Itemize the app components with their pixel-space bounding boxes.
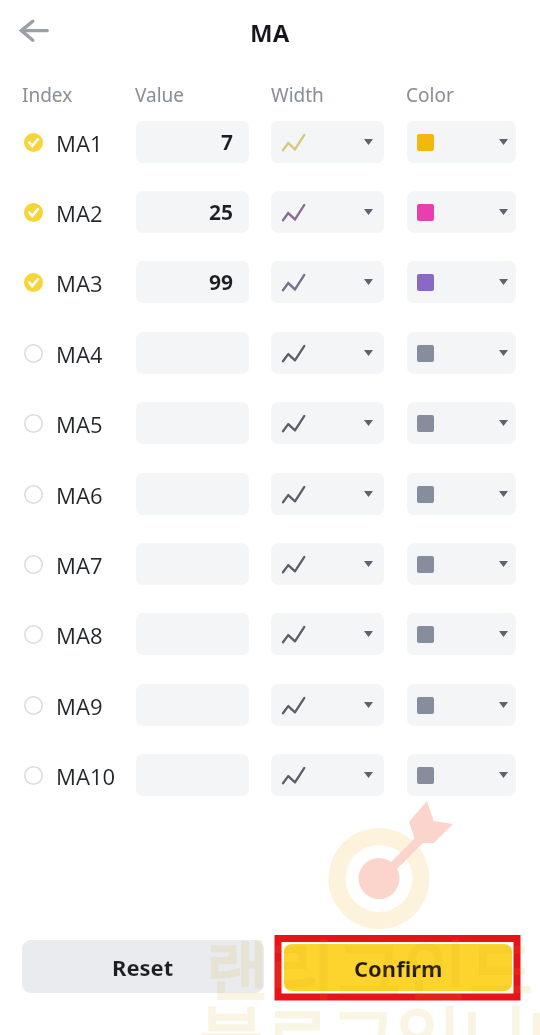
staticText: Color [406, 82, 454, 108]
button[interactable]: Width [271, 684, 384, 726]
button[interactable]: Color [407, 473, 516, 515]
button[interactable]: Width [271, 754, 384, 796]
staticText: Width [271, 82, 324, 108]
button[interactable]: Width [271, 402, 384, 444]
staticText: MA3 [56, 268, 103, 296]
staticText: MA6 [56, 480, 103, 508]
button[interactable]: MA4 [24, 339, 130, 367]
staticText: 7 [221, 128, 234, 157]
button[interactable]: Width [271, 543, 384, 585]
button[interactable]: 99 [136, 261, 249, 303]
button[interactable]: MA6 [24, 480, 130, 508]
button[interactable]: Color [407, 684, 516, 726]
staticText: 랜리그인드 [203, 928, 533, 1011]
button[interactable]: Confirm [284, 944, 512, 991]
staticText: MA2 [56, 198, 103, 226]
staticText: Reset [112, 952, 174, 982]
button[interactable]: Color [407, 543, 516, 585]
button[interactable]: Width [271, 191, 384, 233]
button[interactable]: Color [407, 261, 516, 303]
staticText: MA7 [56, 550, 103, 578]
button[interactable]: Width [271, 473, 384, 515]
button[interactable]: Color [407, 613, 516, 655]
button[interactable]: MA5 [24, 409, 130, 437]
button[interactable]: Width [271, 332, 384, 374]
button[interactable]: MA2 [24, 198, 130, 226]
button[interactable]: Width [271, 613, 384, 655]
button[interactable]: Color [407, 332, 516, 374]
staticText: MA4 [56, 339, 103, 367]
button[interactable]: Color [407, 121, 516, 163]
staticText: MA5 [56, 409, 103, 437]
button[interactable]: MA1 [24, 128, 130, 156]
staticText: 99 [209, 268, 234, 297]
button[interactable]: Color [407, 191, 516, 233]
button[interactable]: MA7 [24, 550, 130, 578]
button[interactable]: 25 [136, 191, 249, 233]
staticText: Value [135, 82, 185, 108]
button[interactable]: Color [407, 754, 516, 796]
button[interactable]: MA3 [24, 268, 130, 296]
button[interactable]: MA8 [24, 620, 130, 648]
staticText: Confirm [354, 953, 443, 983]
button[interactable]: Width [271, 121, 384, 163]
button[interactable]: Reset [22, 940, 264, 993]
staticText: MA10 [56, 761, 116, 789]
button[interactable]: MA9 [24, 691, 130, 719]
button[interactable]: 7 [136, 121, 249, 163]
staticText: MA1 [56, 128, 103, 156]
button[interactable]: Width [271, 261, 384, 303]
button[interactable]: MA10 [24, 761, 130, 789]
staticText: 25 [209, 198, 234, 227]
staticText: MA8 [56, 620, 103, 648]
staticText: MA [250, 16, 290, 49]
staticText: MA9 [56, 691, 103, 719]
staticText: 블로그입니다 [197, 994, 540, 1035]
button[interactable]: Color [407, 402, 516, 444]
staticText: Index [22, 82, 73, 108]
button[interactable]: Back [9, 8, 55, 54]
